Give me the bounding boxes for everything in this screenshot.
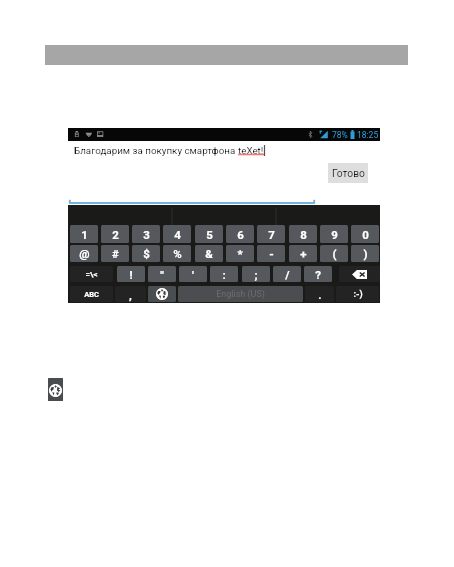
button[interactable]: 4 bbox=[163, 225, 191, 243]
staticText: & bbox=[205, 247, 213, 260]
button[interactable]: + bbox=[289, 245, 317, 262]
button[interactable]: 6 bbox=[226, 225, 254, 243]
button[interactable]: , bbox=[115, 286, 146, 302]
button[interactable]: 5 bbox=[195, 225, 223, 243]
button[interactable]: Готово bbox=[328, 163, 368, 183]
staticText: English (US) bbox=[216, 289, 265, 300]
button[interactable]: :-) bbox=[336, 286, 379, 302]
button[interactable]: 7 bbox=[257, 225, 285, 243]
staticText: - bbox=[269, 247, 274, 260]
button[interactable]: =\< bbox=[70, 266, 113, 282]
staticText: ? bbox=[315, 268, 321, 281]
staticText: 1 bbox=[81, 228, 88, 241]
staticText: ABC bbox=[84, 290, 99, 299]
button[interactable]: English (US) bbox=[178, 286, 303, 302]
button[interactable]: ! bbox=[117, 266, 145, 282]
button[interactable]: ' bbox=[179, 266, 207, 282]
staticText: @ bbox=[79, 247, 90, 260]
staticText: $ bbox=[143, 247, 150, 260]
staticText: * bbox=[237, 247, 243, 260]
button[interactable]: 9 bbox=[320, 225, 348, 243]
staticText: :-) bbox=[353, 289, 363, 300]
staticText: . bbox=[318, 288, 322, 301]
button[interactable]: ( bbox=[320, 245, 348, 262]
button[interactable]: Backspace bbox=[339, 266, 380, 282]
staticText: =\< bbox=[85, 270, 98, 279]
button[interactable]: . bbox=[305, 286, 334, 302]
button[interactable]: / bbox=[273, 266, 301, 282]
staticText: 0 bbox=[362, 228, 369, 241]
button[interactable]: " bbox=[148, 266, 176, 282]
staticText: 9 bbox=[331, 228, 338, 241]
staticText: / bbox=[285, 268, 290, 281]
staticText: ' bbox=[192, 268, 194, 281]
button[interactable]: $ bbox=[132, 245, 160, 262]
button[interactable]: 8 bbox=[289, 225, 317, 243]
staticText: ( bbox=[332, 247, 337, 260]
button[interactable]: 3 bbox=[132, 225, 160, 243]
staticText: # bbox=[112, 247, 119, 260]
button[interactable]: % bbox=[163, 245, 191, 262]
staticText: ) bbox=[363, 247, 368, 260]
staticText: 5 bbox=[206, 228, 213, 241]
staticText: + bbox=[300, 247, 307, 260]
button[interactable]: 1 bbox=[70, 225, 98, 243]
button[interactable]: : bbox=[210, 266, 238, 282]
button[interactable]: & bbox=[195, 245, 223, 262]
staticText: Благодарим за покупку смартфона bbox=[74, 145, 238, 156]
button[interactable]: 2 bbox=[101, 225, 129, 243]
staticText: 2 bbox=[112, 228, 119, 241]
staticText: ! bbox=[129, 268, 133, 281]
button[interactable]: ? bbox=[304, 266, 332, 282]
button[interactable]: @ bbox=[70, 245, 98, 262]
button[interactable]: Change keyboard language bbox=[148, 286, 176, 302]
button[interactable]: ; bbox=[242, 266, 270, 282]
button[interactable]: 0 bbox=[351, 225, 379, 243]
staticText: " bbox=[160, 268, 164, 281]
button[interactable]: Change keyboard language bbox=[48, 378, 63, 401]
staticText: , bbox=[129, 288, 132, 301]
staticText: 3 bbox=[143, 228, 150, 241]
staticText: 6 bbox=[237, 228, 244, 241]
staticText: : bbox=[222, 268, 226, 281]
button[interactable]: # bbox=[101, 245, 129, 262]
staticText: 18:25 bbox=[357, 130, 379, 140]
button[interactable]: ) bbox=[351, 245, 379, 262]
button[interactable]: - bbox=[257, 245, 285, 262]
staticText: 78% bbox=[332, 130, 348, 140]
staticText: % bbox=[173, 247, 182, 260]
button[interactable]: * bbox=[226, 245, 254, 262]
staticText: 4 bbox=[174, 228, 181, 241]
staticText: ; bbox=[254, 268, 258, 281]
staticText: teXet! bbox=[238, 145, 264, 156]
button[interactable]: ABC bbox=[70, 286, 113, 302]
staticText: 8 bbox=[300, 228, 307, 241]
staticText: 7 bbox=[268, 228, 275, 241]
staticText: Готово bbox=[332, 167, 365, 179]
